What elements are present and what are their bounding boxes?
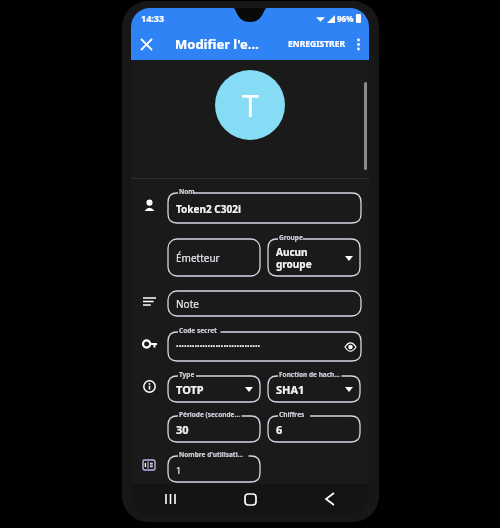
button[interactable]: Période (seconde… <box>167 410 261 443</box>
button[interactable]: Home <box>235 484 265 514</box>
staticText: Groupe <box>279 233 303 242</box>
staticText: ENREGISTRER <box>288 38 345 50</box>
staticText: 6 <box>276 422 283 437</box>
button[interactable]: Recents <box>155 484 185 514</box>
staticText: 30 <box>176 422 189 437</box>
button[interactable]: Chiffres <box>267 410 361 443</box>
staticText: Nom <box>179 187 195 196</box>
staticText: Émetteur <box>176 251 220 265</box>
staticText: Chiffres <box>279 410 305 419</box>
staticText: 14:33 <box>141 12 165 24</box>
button[interactable]: Fonction de hach… <box>267 370 361 403</box>
button[interactable]: Groupe <box>267 233 361 277</box>
button[interactable]: Type <box>167 370 261 403</box>
button[interactable]: More options <box>347 33 369 55</box>
staticText: Fonction de hach… <box>279 370 340 379</box>
staticText: TOTP <box>176 382 204 397</box>
staticText: Aucun groupe <box>276 245 312 271</box>
button[interactable]: Note <box>167 285 362 317</box>
button[interactable]: Back <box>315 484 345 514</box>
staticText: Période (seconde… <box>179 410 241 419</box>
button[interactable]: Code secret <box>167 326 362 362</box>
button[interactable]: Close <box>131 29 161 59</box>
staticText: Nombre d'utilisati… <box>179 450 244 459</box>
button[interactable]: Nom <box>167 187 362 224</box>
button[interactable]: Show secret <box>342 339 358 355</box>
staticText: Token2 C302i <box>176 202 241 216</box>
staticText: SHA1 <box>276 382 305 397</box>
button[interactable]: Nombre d'utilisati… <box>167 450 261 483</box>
staticText: 96% <box>337 13 354 24</box>
staticText: Modifier l'e… <box>175 35 259 53</box>
staticText: 1 <box>176 464 182 476</box>
staticText: T <box>242 85 259 126</box>
staticText: Type <box>179 370 195 379</box>
staticText: •••••••••••••••••••••••••••••••• <box>176 342 261 352</box>
button[interactable]: Émetteur <box>167 233 261 277</box>
button[interactable]: ENREGISTRER <box>286 34 347 54</box>
staticText: Note <box>176 297 199 311</box>
staticText: Code secret <box>179 326 217 335</box>
